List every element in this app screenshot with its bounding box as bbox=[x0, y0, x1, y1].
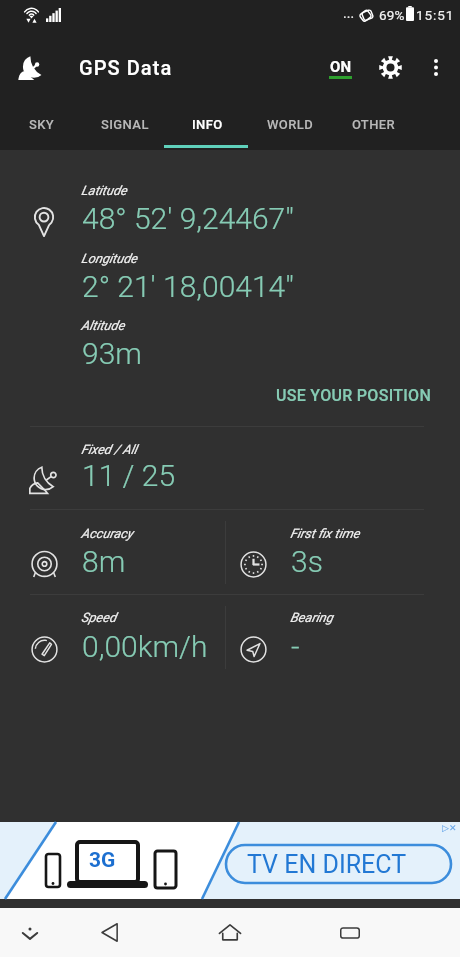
staticText: 48° 52' 9,24467" bbox=[82, 201, 294, 236]
staticText: ▷✕ bbox=[442, 823, 457, 833]
staticText: ON bbox=[330, 58, 352, 76]
staticText: Latitude bbox=[81, 183, 127, 198]
staticText: WORLD bbox=[267, 117, 314, 132]
staticText: ... bbox=[343, 5, 355, 21]
button[interactable]: Hide keyboard bbox=[12, 908, 48, 957]
button[interactable]: ON bbox=[320, 35, 362, 98]
button[interactable]: WORLD bbox=[249, 98, 332, 150]
staticText: 0,00km/h bbox=[82, 629, 208, 664]
button[interactable]: USE YOUR POSITION bbox=[262, 378, 446, 412]
button[interactable]: GPS Data bbox=[10, 47, 52, 89]
staticText: 2° 21' 18,00414" bbox=[82, 269, 294, 304]
staticText: Altitude bbox=[81, 318, 125, 333]
button[interactable]: Recents bbox=[328, 908, 372, 957]
button[interactable]: SKY bbox=[0, 98, 83, 150]
button[interactable]: Settings bbox=[369, 46, 411, 88]
button[interactable]: OTHER bbox=[332, 98, 415, 150]
staticText: 69% bbox=[379, 7, 405, 23]
button[interactable]: 3G bbox=[0, 822, 460, 899]
staticText: GPS Data bbox=[79, 56, 173, 79]
staticText: First fix time bbox=[290, 526, 360, 541]
staticText: - bbox=[291, 629, 300, 664]
staticText: Fixed / All bbox=[81, 442, 137, 457]
button[interactable]: INFO bbox=[166, 98, 249, 150]
staticText: 93m bbox=[82, 336, 142, 371]
button[interactable]: SIGNAL bbox=[83, 98, 166, 150]
button[interactable]: More options bbox=[416, 47, 456, 87]
button[interactable]: Home bbox=[208, 908, 252, 957]
staticText: SKY bbox=[29, 117, 55, 132]
button[interactable]: Back bbox=[87, 908, 131, 957]
staticText: Longitude bbox=[81, 251, 137, 266]
staticText: 8m bbox=[82, 544, 126, 579]
staticText: Bearing bbox=[290, 610, 333, 625]
staticText: 15:51 bbox=[416, 7, 455, 23]
staticText: OTHER bbox=[352, 117, 396, 132]
staticText: TV EN DIRECT bbox=[247, 850, 407, 879]
staticText: INFO bbox=[192, 117, 223, 132]
staticText: Speed bbox=[81, 610, 117, 625]
staticText: USE YOUR POSITION bbox=[276, 386, 432, 405]
staticText: 11 / 25 bbox=[82, 458, 176, 493]
staticText: 3s bbox=[291, 544, 323, 579]
staticText: Accuracy bbox=[81, 526, 133, 541]
staticText: SIGNAL bbox=[101, 117, 149, 132]
staticText: 3G bbox=[89, 848, 116, 873]
